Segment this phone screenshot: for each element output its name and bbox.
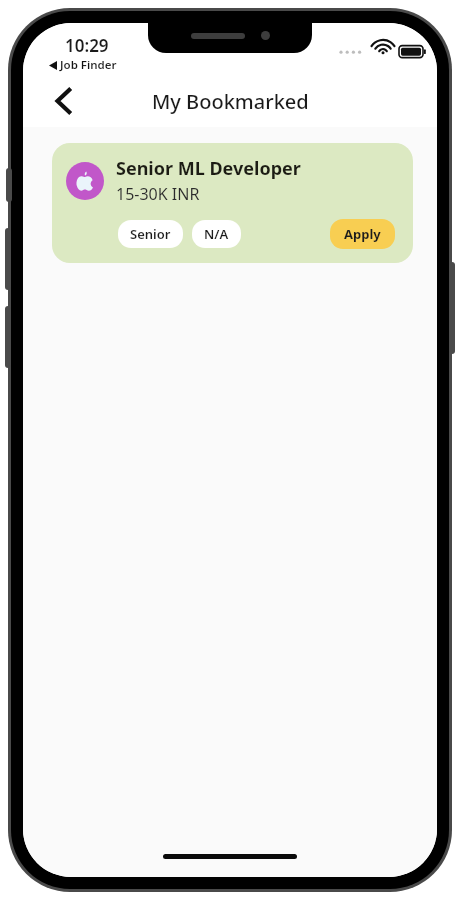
button[interactable]: Senior: [118, 220, 183, 248]
staticText: My Bookmarked: [152, 88, 309, 115]
button[interactable]: Job Finder: [47, 56, 119, 74]
staticText: N/A: [204, 225, 229, 243]
staticText: Apply: [344, 225, 381, 243]
button[interactable]: N/A: [192, 220, 241, 248]
button[interactable]: Senior ML Developer: [52, 143, 413, 263]
staticText: Senior ML Developer: [116, 156, 301, 181]
staticText: Senior: [130, 225, 171, 243]
button[interactable]: Back: [41, 79, 85, 123]
staticText: Job Finder: [60, 57, 117, 73]
staticText: 10:29: [65, 34, 109, 57]
staticText: 15-30K INR: [116, 183, 200, 205]
button[interactable]: Apply: [330, 219, 395, 249]
